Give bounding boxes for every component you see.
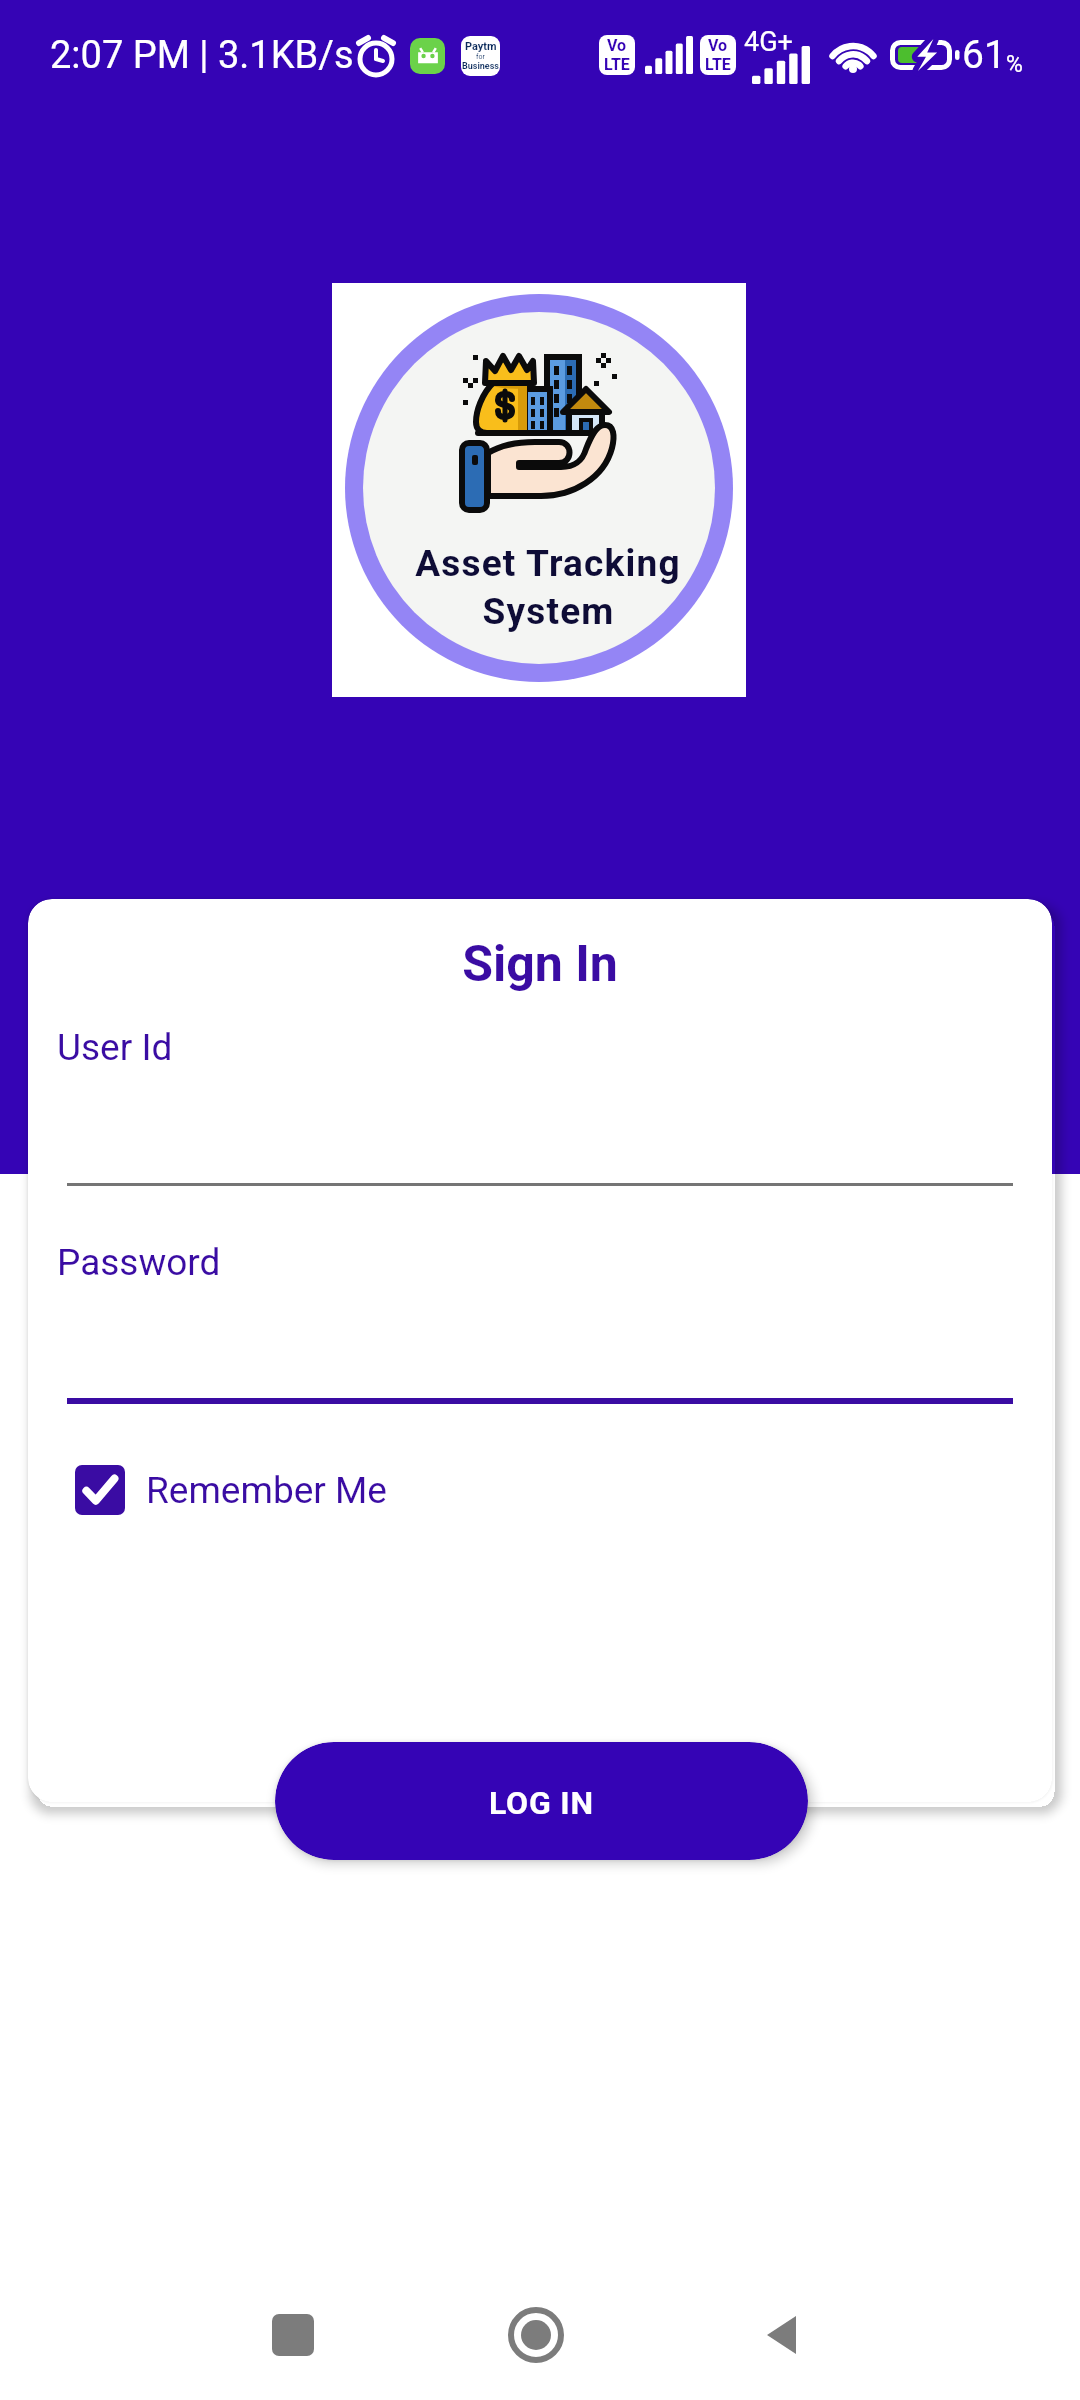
button[interactable]: Home: [509, 2308, 563, 2362]
staticText: LTE: [705, 55, 731, 74]
staticText: 4G+: [744, 26, 793, 58]
staticText: Asset Tracking: [415, 542, 681, 585]
staticText: 61: [962, 32, 1006, 78]
staticText: Paytm: [465, 40, 497, 53]
staticText: Vo: [607, 36, 627, 55]
button[interactable]: Password: [67, 1224, 1013, 1404]
staticText: User Id: [57, 1026, 173, 1069]
staticText: Password: [57, 1241, 221, 1284]
staticText: System: [482, 590, 615, 633]
button[interactable]: LOG IN: [275, 1742, 808, 1860]
staticText: Business: [462, 61, 499, 72]
staticText: LTE: [604, 55, 630, 74]
staticText: Sign In: [28, 935, 1052, 994]
staticText: 2:07 PM | 3.1KB/s: [50, 33, 354, 78]
button[interactable]: Back: [757, 2310, 807, 2360]
staticText: %: [1006, 51, 1023, 78]
staticText: Vo: [708, 36, 728, 55]
staticText: for: [476, 53, 485, 61]
button[interactable]: Remember Me: [75, 1465, 387, 1515]
staticText: LOG IN: [489, 1784, 594, 1822]
button[interactable]: Recent apps: [272, 2314, 314, 2356]
staticText: Remember Me: [146, 1469, 387, 1512]
other: Asset Tracking System logo: [332, 283, 746, 697]
button[interactable]: User Id: [67, 1009, 1013, 1186]
